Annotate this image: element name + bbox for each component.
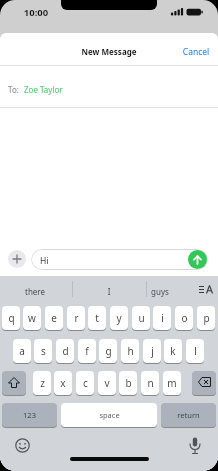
button[interactable] bbox=[189, 437, 201, 455]
button[interactable] bbox=[192, 371, 216, 395]
button[interactable]: d bbox=[56, 339, 74, 363]
button[interactable]: 123 bbox=[2, 403, 57, 427]
staticText: there bbox=[10, 286, 60, 299]
button[interactable]: y bbox=[110, 306, 128, 330]
staticText: Zoe Taylor bbox=[24, 84, 104, 97]
button[interactable]: a bbox=[13, 339, 31, 363]
button[interactable]: v bbox=[98, 371, 116, 395]
button[interactable]: g bbox=[99, 339, 117, 363]
staticText: v bbox=[104, 376, 110, 390]
button[interactable]: there bbox=[10, 286, 60, 299]
staticText: space bbox=[99, 410, 120, 420]
button[interactable]: guys bbox=[135, 286, 185, 299]
button[interactable]: i bbox=[153, 306, 171, 330]
button[interactable]: q bbox=[2, 306, 20, 330]
button[interactable]: r bbox=[67, 306, 85, 330]
staticText: o bbox=[181, 311, 188, 325]
staticText: x bbox=[60, 376, 66, 390]
button[interactable]: c bbox=[76, 371, 94, 395]
button[interactable]: m bbox=[163, 371, 181, 395]
staticText: e bbox=[51, 311, 57, 325]
staticText: f bbox=[85, 344, 89, 358]
button[interactable]: k bbox=[164, 339, 182, 363]
staticText: To: bbox=[8, 84, 28, 97]
button[interactable] bbox=[0, 66, 218, 107]
staticText: d bbox=[62, 344, 69, 358]
staticText: n bbox=[147, 376, 154, 390]
staticText: h bbox=[127, 344, 134, 358]
button[interactable]: p bbox=[197, 306, 215, 330]
staticText: guys bbox=[135, 286, 185, 299]
button[interactable] bbox=[2, 371, 26, 395]
button[interactable]: w bbox=[23, 306, 41, 330]
staticText: l bbox=[194, 344, 197, 358]
button[interactable]: l bbox=[186, 339, 204, 363]
staticText: I bbox=[84, 286, 134, 299]
button[interactable]: n bbox=[141, 371, 159, 395]
button[interactable]: f bbox=[78, 339, 96, 363]
staticText: t bbox=[95, 311, 99, 325]
button[interactable] bbox=[199, 285, 213, 295]
button[interactable] bbox=[8, 250, 26, 268]
button[interactable]: Cancel bbox=[176, 46, 216, 60]
staticText: k bbox=[170, 344, 176, 358]
staticText: return bbox=[177, 410, 200, 420]
button[interactable] bbox=[15, 438, 30, 453]
button[interactable]: z bbox=[33, 371, 51, 395]
staticText: Hi bbox=[40, 255, 70, 269]
button[interactable]: h bbox=[121, 339, 139, 363]
staticText: 123 bbox=[23, 410, 36, 420]
staticText: b bbox=[125, 376, 132, 390]
button[interactable]: s bbox=[34, 339, 52, 363]
button[interactable]: t bbox=[88, 306, 106, 330]
staticText: g bbox=[105, 344, 112, 358]
staticText: 10:00 bbox=[14, 6, 58, 21]
staticText: a bbox=[19, 344, 25, 358]
button[interactable]: u bbox=[132, 306, 150, 330]
button[interactable]: e bbox=[45, 306, 63, 330]
button[interactable]: I bbox=[84, 286, 134, 299]
button[interactable]: o bbox=[175, 306, 193, 330]
staticText: u bbox=[138, 311, 145, 325]
button[interactable]: j bbox=[143, 339, 161, 363]
staticText: w bbox=[28, 311, 36, 325]
staticText: i bbox=[161, 311, 164, 325]
staticText: New Message bbox=[59, 46, 159, 59]
staticText: z bbox=[40, 376, 45, 390]
staticText: j bbox=[151, 344, 154, 358]
button[interactable]: x bbox=[54, 371, 72, 395]
button[interactable]: space bbox=[61, 403, 157, 427]
staticText: p bbox=[203, 311, 210, 325]
staticText: m bbox=[167, 376, 177, 390]
staticText: q bbox=[8, 311, 15, 325]
staticText: r bbox=[74, 311, 79, 325]
staticText: s bbox=[41, 344, 46, 358]
button[interactable]: return bbox=[161, 403, 216, 427]
button[interactable]: b bbox=[119, 371, 137, 395]
button[interactable] bbox=[188, 250, 207, 269]
staticText: y bbox=[116, 311, 122, 325]
staticText: Cancel bbox=[176, 46, 216, 60]
staticText: c bbox=[83, 376, 88, 390]
